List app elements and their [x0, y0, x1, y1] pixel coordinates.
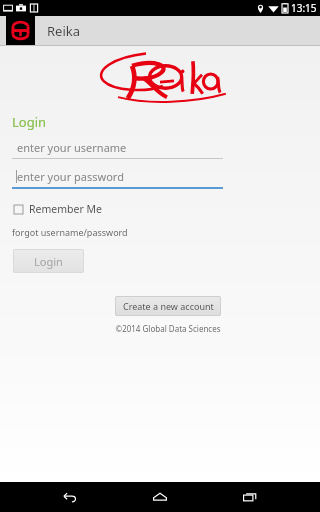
button[interactable]: forgot username/password: [12, 226, 128, 238]
staticText: Login: [34, 254, 63, 269]
button[interactable]: App icon: [6, 16, 35, 45]
button[interactable]: enter your username: [12, 140, 223, 159]
button[interactable]: Back: [50, 482, 90, 512]
button[interactable]: Home: [140, 482, 180, 512]
button[interactable]: Login: [13, 249, 84, 273]
staticText: enter your username: [17, 140, 127, 155]
staticText: Reika: [47, 22, 81, 40]
button[interactable]: Create a new account: [115, 296, 221, 316]
button[interactable]: Remember Me: [14, 202, 102, 216]
staticText: Create a new account: [123, 300, 214, 312]
staticText: 13:15: [291, 1, 317, 15]
staticText: ©2014 Global Data Sciences: [115, 323, 221, 334]
staticText: enter your password: [17, 169, 124, 184]
staticText: Login: [12, 113, 47, 131]
button[interactable]: Recent apps: [230, 482, 270, 512]
button[interactable]: enter your password: [12, 169, 223, 189]
staticText: Remember Me: [29, 202, 102, 216]
